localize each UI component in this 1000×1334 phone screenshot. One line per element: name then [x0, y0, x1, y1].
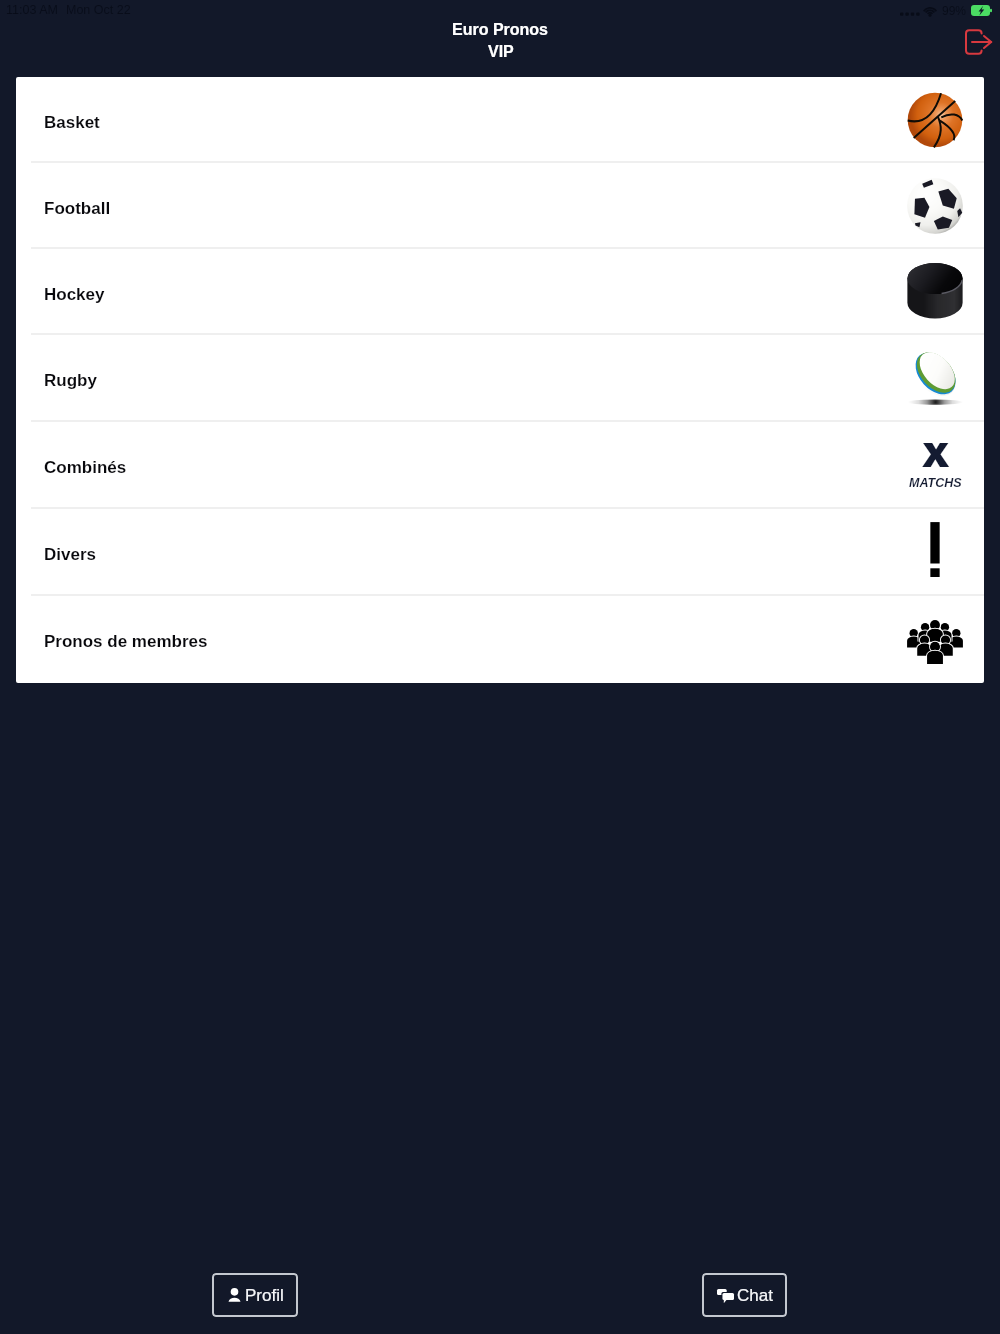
button[interactable]: Divers — [16, 509, 984, 596]
staticText: X — [922, 436, 950, 474]
staticText: Basket — [44, 113, 100, 132]
staticText: Pronos de membres — [44, 632, 208, 651]
staticText: Chat — [737, 1286, 773, 1305]
staticText: VIP — [488, 43, 514, 61]
button[interactable]: Football — [16, 163, 984, 249]
button[interactable]: Logout — [955, 19, 1000, 65]
staticText: Mon Oct 22 — [66, 3, 131, 17]
button[interactable]: Pronos de membres — [16, 596, 984, 683]
staticText: Profil — [245, 1286, 284, 1305]
button[interactable]: Combinés — [16, 422, 984, 509]
button[interactable]: Basket — [16, 77, 984, 163]
button[interactable]: Chat — [702, 1273, 787, 1317]
staticText: Hockey — [44, 285, 105, 304]
button[interactable]: Rugby — [16, 335, 984, 422]
staticText: MATCHS — [909, 476, 962, 490]
staticText: 11:03 AM — [6, 3, 58, 17]
staticText: 99% — [942, 4, 967, 17]
staticText: Euro Pronos — [452, 21, 549, 39]
staticText: Rugby — [44, 371, 97, 390]
staticText: Divers — [44, 545, 96, 564]
staticText: Football — [44, 199, 111, 218]
staticText: Combinés — [44, 458, 127, 477]
button[interactable]: Hockey — [16, 249, 984, 335]
button[interactable]: Profil — [212, 1273, 298, 1317]
